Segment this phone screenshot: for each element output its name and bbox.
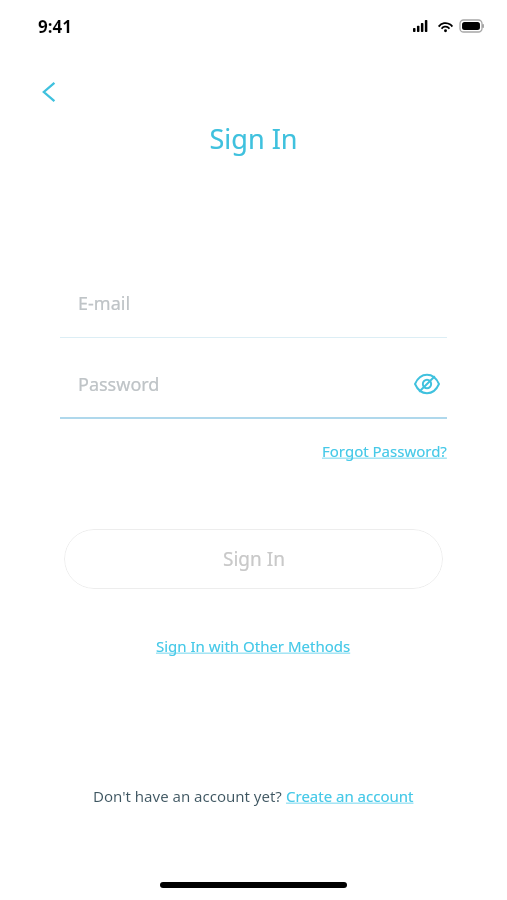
staticText: Sign In xyxy=(223,546,285,572)
button[interactable]: Sign In with Other Methods xyxy=(152,632,355,660)
staticText: Sign In with Other Methods xyxy=(156,636,351,656)
staticText: Don't have an account yet? xyxy=(93,786,286,806)
button[interactable]: Forgot Password? xyxy=(320,438,449,464)
staticText: Password xyxy=(78,372,160,397)
staticText: 9:41 xyxy=(38,15,72,38)
button[interactable]: Create an account xyxy=(286,783,414,809)
button[interactable]: Show password xyxy=(407,364,447,404)
button[interactable]: E-mail xyxy=(60,276,447,338)
staticText: Create an account xyxy=(286,786,414,806)
staticText: E-mail xyxy=(78,291,131,316)
staticText: Forgot Password? xyxy=(322,441,447,461)
button[interactable]: Sign In xyxy=(64,529,443,589)
button[interactable]: Back xyxy=(26,68,74,116)
button[interactable]: Password xyxy=(60,357,447,419)
staticText: Sign In xyxy=(0,120,507,157)
